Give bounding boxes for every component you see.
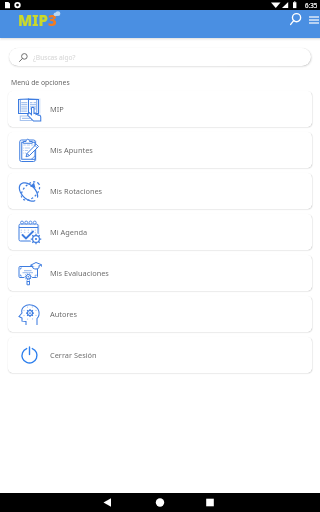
staticText: ¿Buscas algo?: [33, 53, 76, 62]
button[interactable]: Mis Rotaciones: [8, 173, 312, 209]
button[interactable]: MIP: [8, 91, 312, 127]
button[interactable]: Mi Agenda: [8, 214, 312, 250]
staticText: MIP: [18, 10, 48, 30]
staticText: Mis Rotaciones: [50, 186, 103, 196]
button[interactable]: Mis Apuntes: [8, 132, 312, 168]
button[interactable]: Back: [92, 493, 124, 512]
staticText: Autores: [50, 309, 78, 319]
staticText: MIP: [50, 104, 64, 114]
button[interactable]: Cerrar Sesión: [8, 337, 312, 373]
staticText: Mi Agenda: [50, 227, 88, 237]
button[interactable]: Home: [144, 493, 176, 512]
staticText: 6:35: [305, 1, 318, 9]
button[interactable]: Recents: [194, 493, 226, 512]
staticText: Menú de opciones: [11, 78, 70, 87]
staticText: Mis Evaluaciones: [50, 268, 109, 278]
button[interactable]: Autores: [8, 296, 312, 332]
button[interactable]: ¿Buscas algo?: [9, 48, 311, 66]
button[interactable]: Search: [286, 10, 304, 28]
staticText: Mis Apuntes: [50, 145, 93, 155]
button[interactable]: Menu: [305, 11, 320, 28]
staticText: 3: [48, 10, 57, 30]
staticText: Cerrar Sesión: [50, 350, 97, 360]
button[interactable]: Mis Evaluaciones: [8, 255, 312, 291]
